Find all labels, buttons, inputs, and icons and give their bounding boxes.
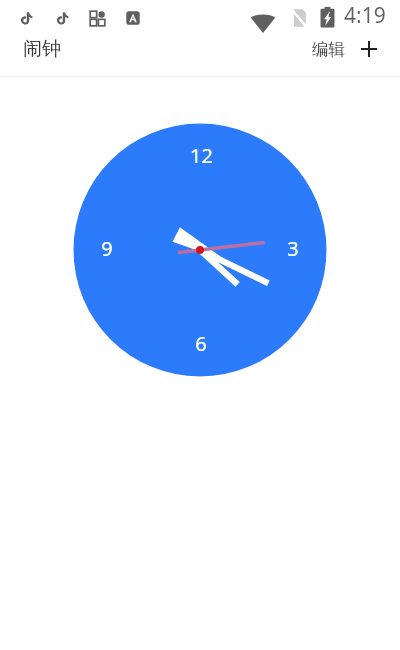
staticText: 编辑: [312, 39, 345, 60]
button[interactable]: 编辑: [303, 34, 353, 64]
staticText: 6: [195, 330, 207, 354]
staticText: 9: [101, 235, 113, 259]
button[interactable]: 闹钟: [14, 34, 92, 64]
staticText: 闹钟: [23, 37, 61, 61]
button[interactable]: Add alarm: [355, 34, 383, 64]
staticText: 12: [190, 142, 213, 166]
staticText: 3: [287, 235, 299, 259]
staticText: 4:19: [344, 1, 386, 30]
